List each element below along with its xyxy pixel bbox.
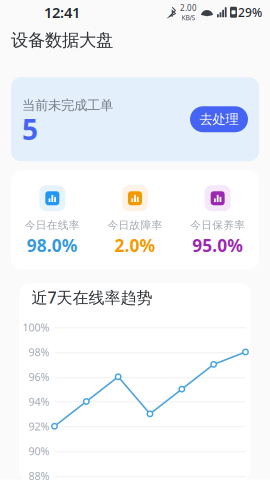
staticText: 98.0% [27,234,78,257]
staticText: 95.0% [192,234,243,257]
staticText: 设备数据大盘 [11,30,113,51]
staticText: 2.00 [180,2,197,13]
button[interactable]: 今日故障率 [94,185,176,253]
staticText: 今日故障率 [107,219,162,232]
staticText: 12:41 [44,2,80,22]
button[interactable]: 去处理 [190,106,248,132]
staticText: 92% [28,419,49,433]
staticText: 88% [28,469,49,480]
staticText: KB/S [181,13,195,22]
staticText: 当前未完成工单 [22,97,113,113]
staticText: 29% [238,4,262,20]
staticText: 90% [28,444,49,458]
staticText: 5 [22,111,38,148]
button[interactable]: 今日保养率 [176,185,259,253]
staticText: 近7天在线率趋势 [31,287,152,308]
staticText: 2.0% [114,234,155,257]
staticText: 94% [28,394,49,409]
staticText: 100% [22,320,49,334]
staticText: 去处理 [199,111,238,127]
staticText: 98% [28,345,49,359]
staticText: 96% [28,370,49,384]
staticText: 今日在线率 [25,219,80,232]
staticText: 今日保养率 [190,219,245,232]
button[interactable]: 今日在线率 [11,185,94,253]
